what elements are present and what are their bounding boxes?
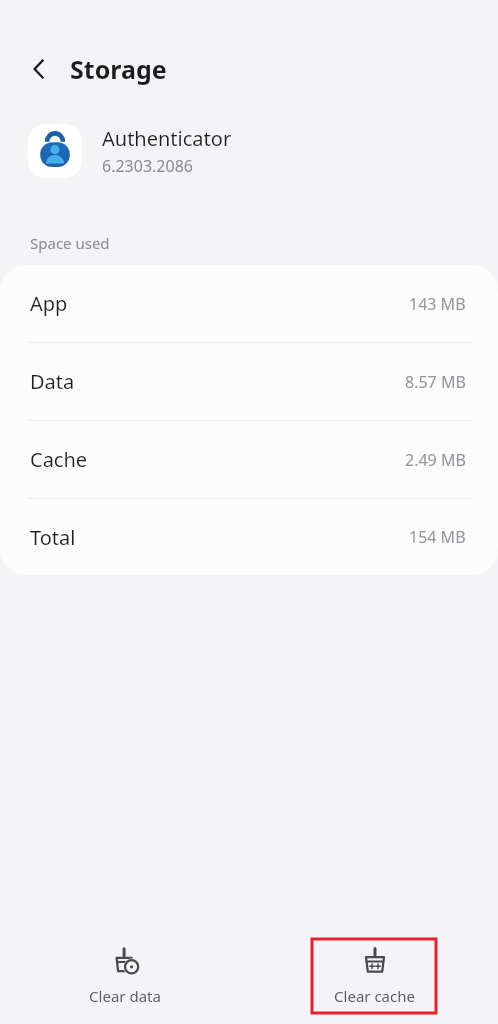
button[interactable]: Back <box>18 48 60 90</box>
staticText: Clear cache <box>334 986 415 1006</box>
button[interactable]: Data <box>0 343 498 421</box>
button[interactable]: Total <box>0 499 498 575</box>
button[interactable]: Cache <box>0 421 498 499</box>
staticText: 6.2303.2086 <box>102 155 193 177</box>
button[interactable]: Clear data <box>63 939 187 1013</box>
staticText: Clear data <box>89 986 161 1006</box>
button[interactable]: App <box>0 265 498 343</box>
staticText: Space used <box>30 233 110 253</box>
staticText: 8.57 MB <box>405 371 466 393</box>
staticText: 2.49 MB <box>405 449 466 471</box>
staticText: Data <box>30 368 75 395</box>
staticText: Storage <box>70 52 167 86</box>
button[interactable]: Clear cache <box>312 939 436 1013</box>
staticText: App <box>30 290 68 317</box>
staticText: Cache <box>30 446 88 473</box>
staticText: 154 MB <box>409 526 466 548</box>
staticText: Total <box>30 524 76 551</box>
staticText: 143 MB <box>409 293 466 315</box>
staticText: Authenticator <box>102 125 232 152</box>
